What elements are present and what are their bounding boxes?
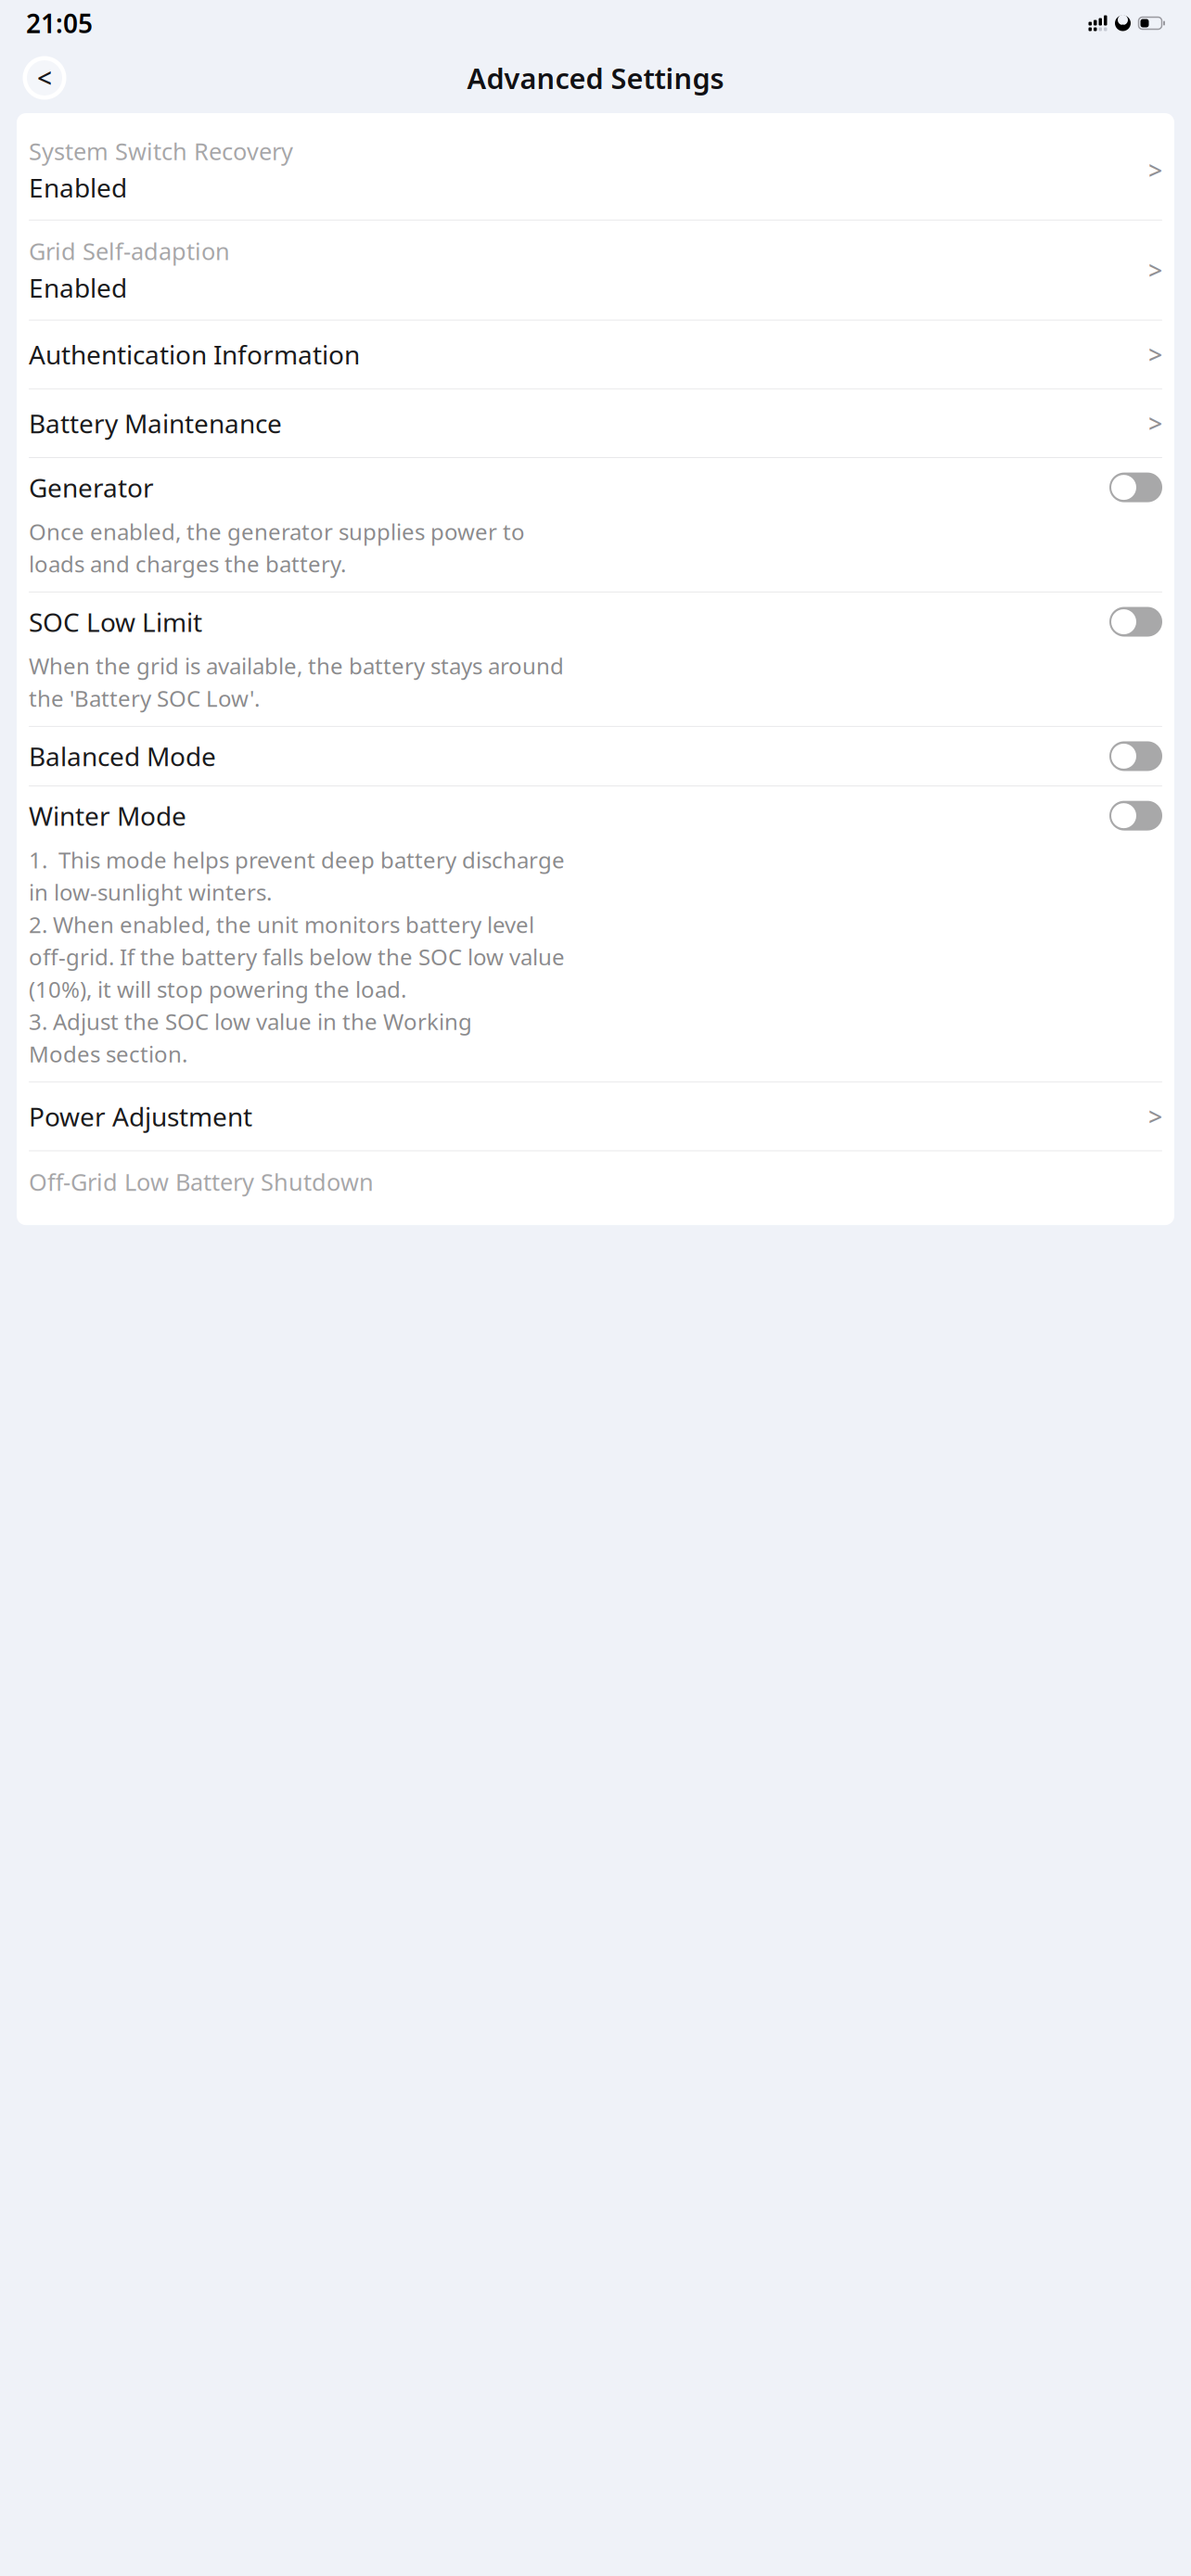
staticText: 3. Adjust the SOC low value in the Worki… bbox=[29, 1007, 472, 1036]
staticText: Once enabled, the generator supplies pow… bbox=[29, 517, 525, 546]
staticText: Power Adjustment bbox=[29, 1099, 252, 1134]
staticText: loads and charges the battery. bbox=[29, 549, 346, 579]
staticText: Enabled bbox=[29, 270, 127, 305]
staticText: > bbox=[1148, 1100, 1162, 1133]
staticText: 1. This mode helps prevent deep battery … bbox=[29, 845, 565, 875]
button[interactable]: Authentication Information bbox=[17, 320, 1174, 388]
button[interactable]: Generator bbox=[17, 458, 1174, 517]
staticText: 21:05 bbox=[26, 6, 93, 40]
staticText: > bbox=[1148, 338, 1162, 371]
staticText: 2. When enabled, the unit monitors batte… bbox=[29, 910, 534, 939]
staticText: > bbox=[1148, 407, 1162, 440]
staticText: the 'Battery SOC Low'. bbox=[29, 683, 260, 713]
button[interactable]: Power Adjustment bbox=[17, 1082, 1174, 1150]
staticText: Generator bbox=[29, 470, 154, 505]
button[interactable]: Back bbox=[19, 53, 70, 103]
staticText: in low-sunlight winters. bbox=[29, 877, 272, 907]
staticText: Modes section. bbox=[29, 1039, 187, 1069]
staticText: Authentication Information bbox=[29, 337, 360, 372]
staticText: Balanced Mode bbox=[29, 739, 216, 773]
staticText: Grid Self-adaption bbox=[29, 235, 230, 267]
staticText: Winter Mode bbox=[29, 798, 186, 833]
button[interactable]: SOC Low Limit bbox=[17, 592, 1174, 651]
staticText: Advanced Settings bbox=[467, 59, 724, 97]
button[interactable]: Grid Self-adaption bbox=[17, 221, 1174, 320]
staticText: System Switch Recovery bbox=[29, 135, 293, 167]
staticText: > bbox=[1148, 254, 1162, 286]
staticText: When the grid is available, the battery … bbox=[29, 651, 564, 681]
staticText: off-grid. If the battery falls below the… bbox=[29, 942, 565, 972]
staticText: > bbox=[1148, 154, 1162, 186]
staticText: SOC Low Limit bbox=[29, 604, 202, 639]
button[interactable]: System Switch Recovery bbox=[17, 121, 1174, 220]
staticText: (10%), it will stop powering the load. bbox=[29, 974, 406, 1004]
button[interactable]: Battery Maintenance bbox=[17, 389, 1174, 457]
button[interactable]: Winter Mode bbox=[17, 786, 1174, 845]
staticText: Battery Maintenance bbox=[29, 406, 282, 440]
staticText: < bbox=[37, 61, 52, 95]
button[interactable]: Balanced Mode bbox=[17, 727, 1174, 786]
staticText: Off-Grid Low Battery Shutdown bbox=[29, 1166, 374, 1197]
staticText: Enabled bbox=[29, 170, 127, 205]
